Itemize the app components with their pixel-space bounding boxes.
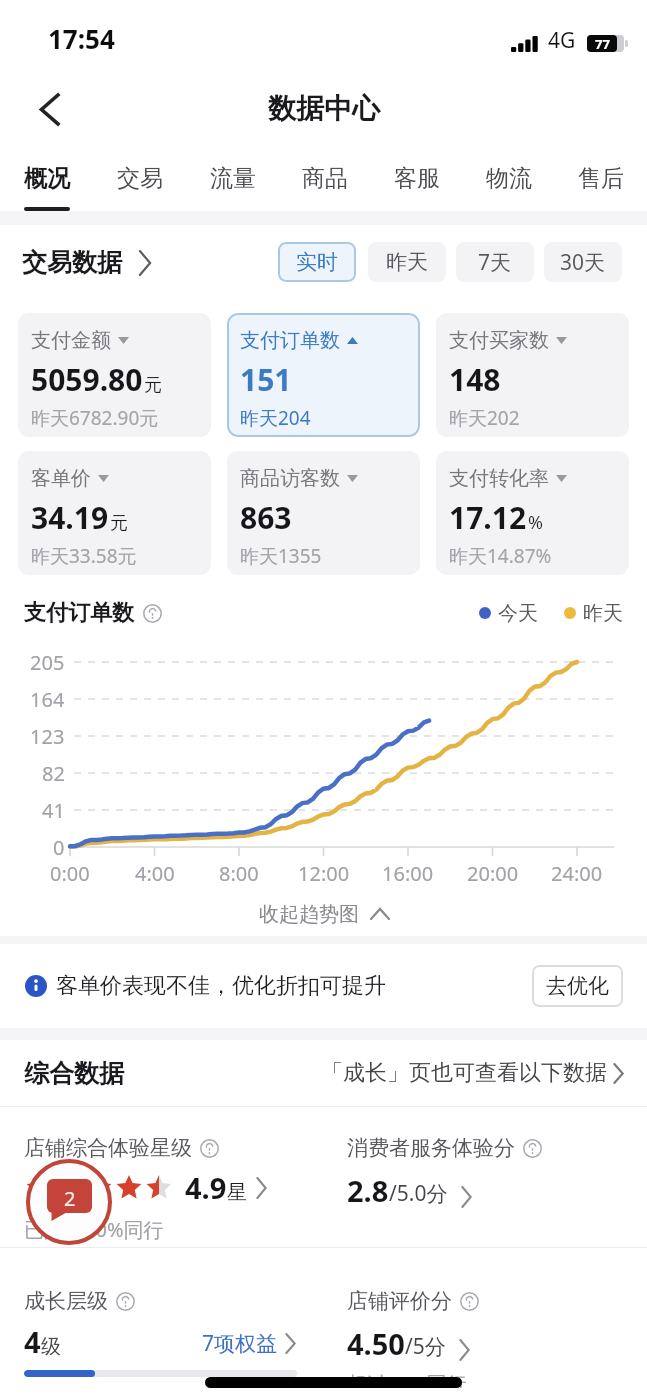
button[interactable]: 概况 — [0, 145, 93, 211]
staticText: 收起趋势图 — [259, 902, 359, 927]
staticText: 超过51%同行 — [347, 1370, 467, 1388]
staticText: 205 — [30, 649, 65, 676]
staticText: 12:00 — [298, 860, 350, 887]
staticText: 0:00 — [50, 860, 90, 887]
button[interactable]: 物流 — [463, 145, 555, 211]
staticText: 2.8 — [347, 1171, 389, 1210]
button[interactable]: 售后 — [555, 145, 647, 211]
staticText: 交易数据 — [22, 247, 122, 278]
staticText: 昨天33.58元 — [31, 543, 137, 569]
staticText: 店铺综合体验星级 — [24, 1135, 192, 1161]
staticText: 5059.80 — [31, 359, 143, 400]
button[interactable]: 交易 — [93, 145, 186, 211]
button[interactable]: 「成长」页也可查看以下数据 — [321, 1059, 625, 1087]
staticText: 售后 — [578, 164, 624, 193]
button[interactable]: 流量 — [186, 145, 279, 211]
staticText: 客单价表现不佳，优化折扣可提升 — [56, 972, 386, 1000]
staticText: 7项权益 — [202, 1329, 278, 1358]
button[interactable]: 商品 — [279, 145, 371, 211]
staticText: 支付转化率 — [449, 466, 549, 491]
button[interactable]: 客服 — [371, 145, 463, 211]
button[interactable]: 支付买家数 — [436, 313, 629, 437]
staticText: 17:54 — [48, 21, 115, 56]
button[interactable]: 店铺评价分 — [323, 1248, 647, 1388]
button[interactable]: 支付订单数 — [227, 313, 420, 437]
staticText: 164 — [30, 686, 65, 713]
button[interactable]: 7天 — [456, 242, 534, 282]
staticText: 实时 — [296, 249, 338, 275]
staticText: /5.0分 — [389, 1179, 448, 1208]
staticText: 0 — [53, 834, 65, 861]
staticText: 148 — [449, 359, 501, 400]
button[interactable]: 昨天 — [368, 242, 446, 282]
staticText: /5分 — [405, 1332, 446, 1361]
staticText: 「成长」页也可查看以下数据 — [321, 1059, 607, 1087]
staticText: 8:00 — [219, 860, 259, 887]
staticText: 昨天202 — [449, 405, 520, 431]
staticText: 元 — [144, 374, 162, 397]
staticText: 82 — [42, 760, 65, 787]
staticText: 店铺评价分 — [347, 1288, 452, 1314]
staticText: 客单价 — [31, 466, 91, 491]
button[interactable]: 实时 — [278, 242, 356, 282]
button[interactable]: 支付金额 — [18, 313, 211, 437]
staticText: 151 — [240, 359, 292, 400]
button[interactable]: Messages — [47, 1179, 92, 1221]
staticText: 昨天204 — [240, 405, 311, 431]
staticText: 昨天 — [583, 601, 623, 626]
staticText: 流量 — [210, 164, 256, 193]
staticText: 昨天6782.90元 — [31, 405, 159, 431]
staticText: 昨天 — [386, 249, 428, 275]
button[interactable]: 支付转化率 — [436, 451, 629, 575]
staticText: 17.12 — [449, 497, 527, 538]
staticText: 4:00 — [135, 860, 175, 887]
staticText: 24:00 — [551, 860, 603, 887]
staticText: 综合数据 — [24, 1058, 124, 1089]
staticText: 消费者服务体验分 — [347, 1135, 515, 1161]
button[interactable]: 客单价 — [18, 451, 211, 575]
staticText: 商品访客数 — [240, 466, 340, 491]
button[interactable]: 店铺综合体验星级 — [0, 1107, 323, 1247]
staticText: 4 — [24, 1322, 41, 1361]
staticText: 41 — [42, 797, 65, 824]
button[interactable]: 消费者服务体验分 — [323, 1107, 647, 1247]
staticText: 数据中心 — [268, 91, 380, 126]
staticText: 863 — [240, 497, 292, 538]
button[interactable]: 商品访客数 — [227, 451, 420, 575]
staticText: 元 — [110, 512, 128, 535]
staticText: 概况 — [24, 164, 70, 193]
staticText: 昨天14.87% — [449, 543, 552, 569]
staticText: 2 — [64, 1185, 76, 1212]
staticText: 支付订单数 — [24, 599, 134, 627]
staticText: 7天 — [478, 248, 512, 277]
staticText: 4.50 — [347, 1324, 405, 1363]
staticText: 77 — [595, 35, 610, 52]
button[interactable]: 30天 — [544, 242, 622, 282]
staticText: 30天 — [560, 248, 606, 277]
staticText: 支付金额 — [31, 328, 111, 353]
button[interactable]: 成长层级 — [0, 1248, 323, 1388]
staticText: 已超过60%同行 — [24, 1216, 164, 1243]
staticText: 级 — [41, 1334, 61, 1359]
staticText: 星 — [227, 1180, 247, 1205]
staticText: 支付订单数 — [240, 328, 340, 353]
button[interactable]: 去优化 — [532, 965, 623, 1007]
staticText: 4.9 — [185, 1168, 227, 1207]
staticText: 距下一层级 10814元 — [24, 1384, 207, 1388]
button[interactable]: 交易数据 — [22, 247, 153, 278]
staticText: 昨天1355 — [240, 543, 322, 569]
button[interactable]: 7项权益 — [202, 1329, 297, 1361]
staticText: 20:00 — [467, 860, 519, 887]
staticText: 去优化 — [546, 973, 609, 999]
staticText: % — [528, 510, 543, 535]
staticText: 交易 — [117, 164, 163, 193]
staticText: 34.19 — [31, 497, 109, 538]
staticText: 今天 — [498, 601, 538, 626]
staticText: 支付买家数 — [449, 328, 549, 353]
button[interactable]: 收起趋势图 — [0, 892, 647, 936]
staticText: 商品 — [302, 164, 348, 193]
staticText: 物流 — [486, 164, 532, 193]
staticText: 成长层级 — [24, 1288, 108, 1314]
staticText: 客服 — [394, 164, 440, 193]
button[interactable]: Back — [26, 86, 72, 132]
